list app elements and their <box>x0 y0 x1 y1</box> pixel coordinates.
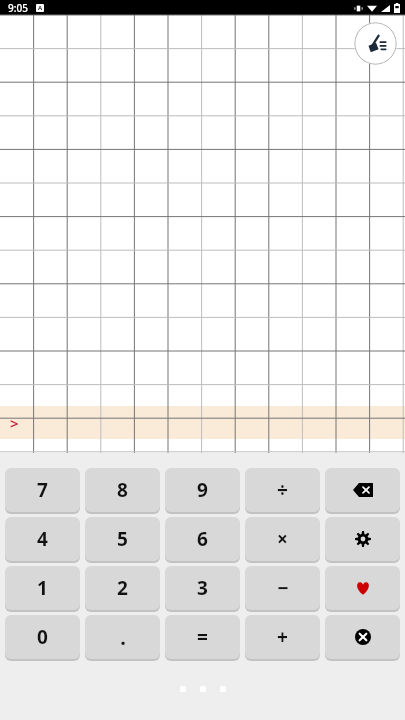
staticText: 4 <box>37 526 48 552</box>
button[interactable]: − <box>245 566 320 610</box>
button[interactable]: 9 <box>165 468 240 512</box>
button[interactable]: Favorites <box>325 566 400 610</box>
staticText: A <box>38 4 43 12</box>
button[interactable]: Settings <box>325 517 400 561</box>
button[interactable]: + <box>245 615 320 659</box>
button[interactable]: 6 <box>165 517 240 561</box>
button[interactable]: ÷ <box>245 468 320 512</box>
staticText: = <box>197 624 208 650</box>
button[interactable]: . <box>85 615 160 659</box>
staticText: 7 <box>37 477 48 503</box>
staticText: 3 <box>197 575 208 601</box>
button[interactable]: = <box>165 615 240 659</box>
staticText: 6 <box>197 526 208 552</box>
staticText: ÷ <box>277 477 288 503</box>
button[interactable]: 8 <box>85 468 160 512</box>
staticText: + <box>277 624 288 650</box>
button[interactable]: × <box>245 517 320 561</box>
staticText: 1 <box>37 575 48 601</box>
button[interactable]: Clear sheet <box>354 22 397 65</box>
button[interactable]: 1 <box>5 566 80 610</box>
staticText: 2 <box>117 575 128 601</box>
staticText: 8 <box>117 477 128 503</box>
button[interactable]: 0 <box>5 615 80 659</box>
button[interactable]: 4 <box>5 517 80 561</box>
staticText: × <box>277 526 288 552</box>
button[interactable]: Backspace <box>325 468 400 512</box>
button[interactable]: 3 <box>165 566 240 610</box>
staticText: − <box>277 575 289 601</box>
button[interactable]: 5 <box>85 517 160 561</box>
button[interactable]: 2 <box>85 566 160 610</box>
button[interactable]: 7 <box>5 468 80 512</box>
staticText: 0 <box>37 624 48 650</box>
button[interactable]: Clear <box>325 615 400 659</box>
staticText: 9 <box>197 477 208 503</box>
staticText: 5 <box>117 526 128 552</box>
staticText: . <box>120 624 126 651</box>
staticText: > <box>10 413 19 433</box>
staticText: 9:05 <box>8 1 28 15</box>
